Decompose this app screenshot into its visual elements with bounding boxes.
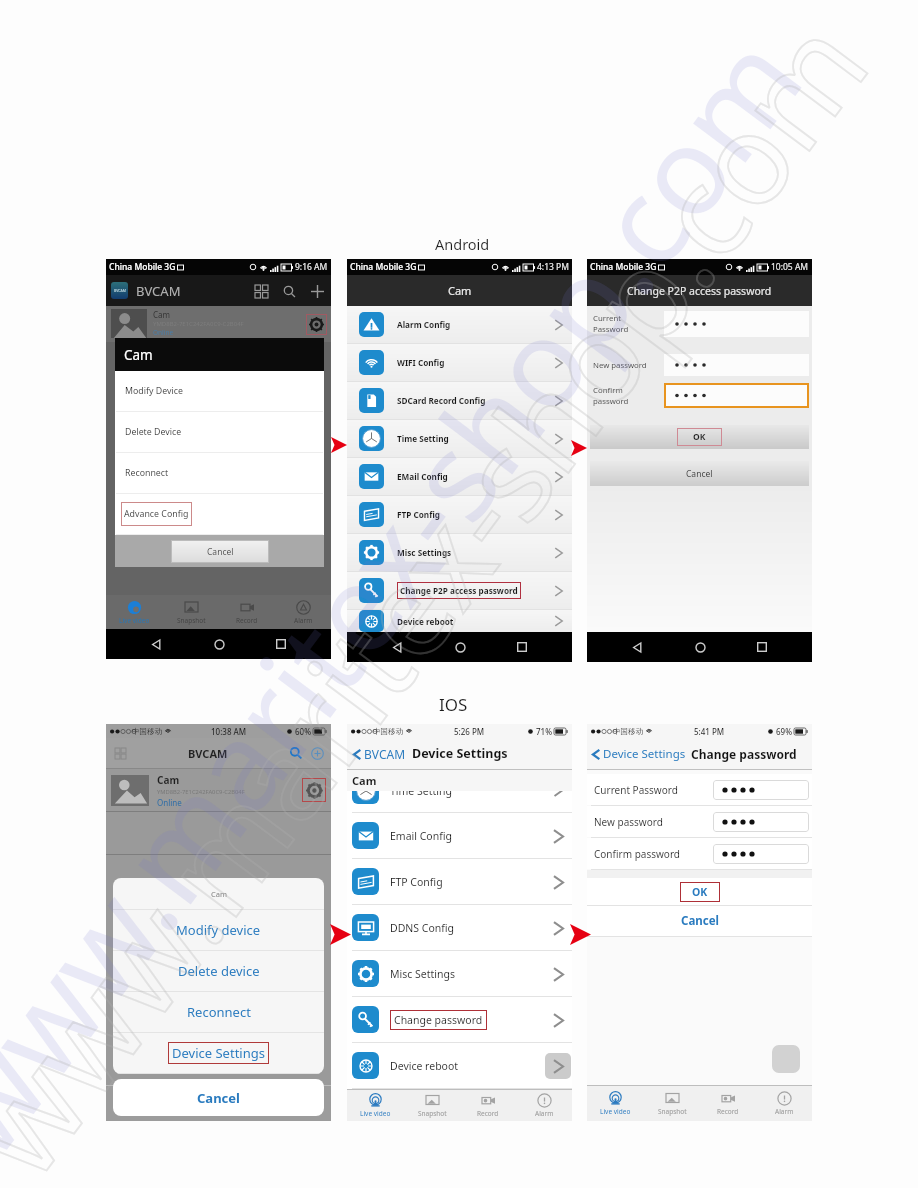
- staticText: Cancel: [207, 546, 234, 558]
- button[interactable]: Reconnect: [115, 453, 324, 493]
- button[interactable]: Change P2P access password: [347, 572, 572, 609]
- button[interactable]: Device Settings: [113, 1033, 324, 1073]
- staticText: Time Setting: [390, 791, 452, 798]
- button[interactable]: Recents: [268, 631, 294, 657]
- button[interactable]: Search: [280, 282, 298, 300]
- staticText: 5:26 PM: [454, 726, 485, 737]
- button[interactable]: Add: [309, 745, 325, 761]
- button[interactable]: Live video: [587, 1086, 644, 1121]
- button[interactable]: Home: [206, 631, 232, 657]
- staticText: Cam: [448, 283, 472, 298]
- staticText: Alarm: [535, 1109, 554, 1118]
- button[interactable]: Alarm Config: [347, 306, 572, 343]
- staticText: Live video: [119, 616, 150, 625]
- staticText: Cancel: [681, 913, 719, 929]
- button[interactable]: Recents: [509, 634, 535, 660]
- button[interactable]: Alarm: [756, 1086, 812, 1121]
- staticText: Cancel: [197, 1089, 240, 1107]
- staticText: Email Config: [390, 829, 452, 843]
- staticText: Current Password: [593, 313, 629, 335]
- button[interactable]: Back: [384, 634, 410, 660]
- button[interactable]: [713, 844, 809, 864]
- button[interactable]: Grid view: [252, 282, 270, 300]
- button[interactable]: EMail Config: [347, 458, 572, 495]
- button[interactable]: Delete Device: [115, 412, 324, 452]
- button[interactable]: [713, 780, 809, 800]
- staticText: Time Setting: [397, 433, 449, 444]
- staticText: BVCAM: [188, 746, 228, 761]
- button[interactable]: Snapshot: [163, 1086, 219, 1121]
- button[interactable]: Change password: [347, 997, 572, 1042]
- button[interactable]: DDNS Config: [347, 905, 572, 950]
- button[interactable]: Record: [219, 595, 275, 629]
- button[interactable]: [713, 812, 809, 832]
- button[interactable]: Device reboot: [347, 1043, 572, 1088]
- button[interactable]: OK: [587, 878, 812, 905]
- button[interactable]: BVCAM: [351, 746, 406, 762]
- button[interactable]: [664, 354, 809, 376]
- button[interactable]: Grid: [112, 745, 128, 761]
- staticText: Cam: [352, 773, 377, 788]
- staticText: Device reboot: [390, 1059, 459, 1073]
- button[interactable]: Device Settings: [590, 746, 686, 762]
- button[interactable]: Live video: [106, 595, 163, 629]
- button[interactable]: FTP Config: [347, 496, 572, 533]
- button[interactable]: Snapshot: [163, 595, 219, 629]
- button[interactable]: Alarm: [516, 1090, 572, 1121]
- staticText: Advance Config: [124, 508, 189, 520]
- button[interactable]: Add device: [308, 282, 326, 300]
- button[interactable]: Record: [219, 1086, 275, 1121]
- button[interactable]: Home: [447, 634, 473, 660]
- staticText: Android: [435, 234, 490, 254]
- button[interactable]: Cancel: [587, 906, 812, 936]
- button[interactable]: OK: [590, 425, 809, 449]
- button[interactable]: [664, 383, 809, 408]
- button[interactable]: Alarm: [275, 1086, 331, 1121]
- button[interactable]: Misc Settings: [347, 534, 572, 571]
- staticText: EMail Config: [397, 471, 448, 482]
- button[interactable]: Cancel: [590, 461, 809, 486]
- button[interactable]: FTP Config: [347, 859, 572, 904]
- button[interactable]: Modify Device: [115, 371, 324, 411]
- button[interactable]: Reconnect: [113, 992, 324, 1032]
- button[interactable]: Search: [288, 745, 304, 761]
- button[interactable]: Back: [143, 631, 169, 657]
- button[interactable]: Device settings: [306, 314, 327, 335]
- staticText: Delete device: [178, 962, 260, 980]
- button[interactable]: Misc Settings: [347, 951, 572, 996]
- button[interactable]: Recents: [749, 634, 775, 660]
- button[interactable]: Cancel: [113, 1079, 324, 1116]
- button[interactable]: Device reboot: [347, 610, 572, 632]
- button[interactable]: Record: [460, 1090, 516, 1121]
- button[interactable]: Device settings: [302, 778, 326, 802]
- button[interactable]: Cancel: [171, 540, 269, 563]
- staticText: YMD8B2-7E1C242FA0C9-C2B04F: [157, 788, 245, 796]
- staticText: BVCAM: [136, 282, 181, 300]
- staticText: Reconnect: [187, 1003, 251, 1021]
- staticText: Change P2P access password: [400, 585, 518, 596]
- staticText: FTP Config: [390, 875, 443, 889]
- button[interactable]: Live video: [347, 1090, 404, 1121]
- button[interactable]: Snapshot: [644, 1086, 700, 1121]
- button[interactable]: Record: [700, 1086, 756, 1121]
- button[interactable]: [664, 311, 809, 337]
- button[interactable]: Advance Config: [115, 494, 324, 534]
- button[interactable]: Delete device: [113, 951, 324, 991]
- staticText: Cam: [157, 773, 180, 787]
- button[interactable]: Modify device: [113, 910, 324, 950]
- button[interactable]: Alarm: [275, 595, 331, 629]
- button[interactable]: Back: [624, 634, 650, 660]
- button[interactable]: Snapshot: [404, 1090, 460, 1121]
- button[interactable]: WIFI Config: [347, 344, 572, 381]
- button[interactable]: Home: [687, 634, 713, 660]
- staticText: 中国移动: [132, 727, 162, 736]
- button[interactable]: Email Config: [347, 813, 572, 858]
- button[interactable]: Live video: [106, 1086, 163, 1121]
- button[interactable]: Time Setting: [347, 420, 572, 457]
- staticText: 9:16 AM: [295, 261, 328, 273]
- button[interactable]: SDCard Record Config: [347, 382, 572, 419]
